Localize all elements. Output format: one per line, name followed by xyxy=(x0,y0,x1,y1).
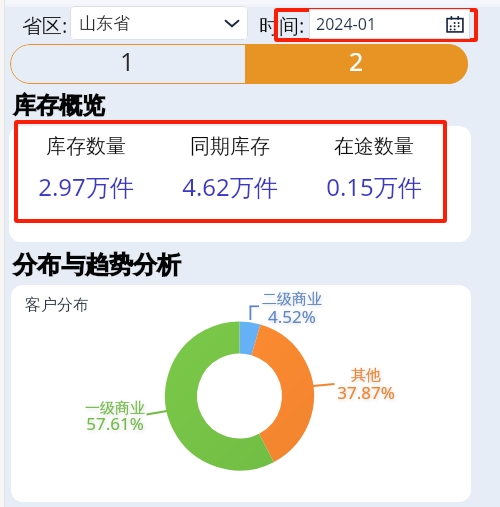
staticText: 二级商业 xyxy=(232,290,352,309)
staticText: 2 xyxy=(349,44,364,78)
staticText: 4.62万件 xyxy=(182,170,278,203)
staticText: 客户分布 xyxy=(25,295,89,315)
button[interactable]: 1 xyxy=(10,44,245,84)
staticText: 57.61% xyxy=(55,412,175,435)
staticText: 时间: xyxy=(259,12,305,39)
staticText: 2.97万件 xyxy=(38,170,134,203)
staticText: 同期库存 xyxy=(190,134,270,159)
staticText: 库存概览 xyxy=(13,91,105,120)
button[interactable]: 山东省 xyxy=(70,6,248,40)
button[interactable]: 同期库存 xyxy=(158,122,302,222)
button[interactable]: 2024-01 xyxy=(309,9,470,39)
staticText: 4.52% xyxy=(232,305,352,328)
staticText: 在途数量 xyxy=(334,134,414,159)
staticText: 分布与趋势分析 xyxy=(13,250,181,280)
staticText: 山东省 xyxy=(79,13,130,34)
button[interactable]: 2 xyxy=(245,44,468,84)
staticText: 0.15万件 xyxy=(326,170,422,203)
staticText: 37.87% xyxy=(306,381,426,404)
button[interactable]: 在途数量 xyxy=(302,122,446,222)
other: Pick date xyxy=(446,15,464,33)
staticText: 一级商业 xyxy=(55,399,175,418)
staticText: 省区: xyxy=(22,12,68,39)
button[interactable]: 库存数量 xyxy=(14,122,158,222)
staticText: 其他 xyxy=(306,366,426,385)
staticText: 2024-01 xyxy=(316,13,377,35)
staticText: 1 xyxy=(120,44,135,78)
staticText: 库存数量 xyxy=(46,134,126,159)
